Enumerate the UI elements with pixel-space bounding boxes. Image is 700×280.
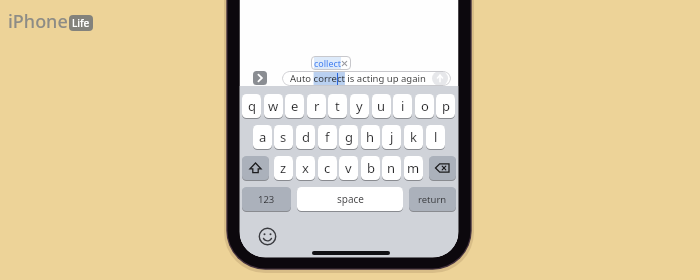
button[interactable]: b	[361, 156, 380, 180]
button[interactable]	[429, 156, 456, 180]
staticText: o	[421, 97, 429, 115]
button[interactable]: x	[296, 156, 315, 180]
staticText: p	[442, 97, 450, 115]
staticText: g	[345, 128, 353, 146]
staticText: collect	[314, 57, 342, 69]
button[interactable]: n	[382, 156, 401, 180]
button[interactable]: p	[436, 94, 455, 118]
button[interactable]: Auto correct is acting up again	[282, 71, 451, 86]
button[interactable]: a	[253, 125, 272, 149]
button[interactable]: j	[382, 125, 401, 149]
button[interactable]: h	[361, 125, 380, 149]
staticText: n	[387, 159, 396, 177]
staticText: s	[280, 128, 287, 146]
button[interactable]: iPhone	[8, 9, 92, 34]
button[interactable]	[432, 71, 448, 86]
button[interactable]	[253, 71, 267, 85]
staticText: m	[407, 159, 420, 177]
staticText: iPhone	[8, 9, 68, 34]
button[interactable]: l	[426, 125, 445, 149]
staticText: u	[377, 97, 386, 115]
staticText: b	[367, 159, 375, 177]
button[interactable]: 123	[242, 187, 291, 211]
staticText: t	[335, 97, 340, 115]
staticText: d	[302, 128, 310, 146]
staticText: k	[410, 128, 417, 146]
staticText: y	[356, 97, 363, 115]
button[interactable]: k	[404, 125, 423, 149]
staticText: i	[401, 97, 405, 115]
staticText: r	[314, 97, 320, 115]
staticText: Life	[72, 16, 90, 30]
staticText: w	[268, 97, 279, 115]
button[interactable]: z	[274, 156, 293, 180]
staticText: space	[337, 192, 364, 206]
button[interactable]: return	[409, 187, 456, 211]
staticText: return	[418, 193, 447, 206]
button[interactable]: c	[318, 156, 337, 180]
staticText: h	[366, 128, 375, 146]
staticText: e	[291, 97, 299, 115]
button[interactable]: m	[404, 156, 423, 180]
button[interactable]: collect	[311, 56, 351, 70]
staticText: l	[434, 128, 438, 146]
button[interactable]: w	[264, 94, 283, 118]
button[interactable]: o	[415, 94, 434, 118]
staticText: v	[345, 159, 352, 177]
button[interactable]: s	[274, 125, 293, 149]
button[interactable]: d	[296, 125, 315, 149]
staticText: q	[248, 97, 256, 115]
staticText: f	[325, 128, 330, 146]
staticText: Auto correct is acting up again	[290, 72, 426, 85]
staticText: z	[280, 159, 287, 177]
button[interactable]: e	[285, 94, 304, 118]
staticText: 123	[258, 193, 275, 206]
button[interactable]: r	[307, 94, 326, 118]
button[interactable]: y	[350, 94, 369, 118]
button[interactable]: q	[242, 94, 261, 118]
staticText: j	[390, 128, 394, 146]
staticText: x	[302, 159, 309, 177]
button[interactable]: i	[393, 94, 412, 118]
button[interactable]: space	[297, 187, 403, 211]
button[interactable]: t	[328, 94, 347, 118]
button[interactable]: v	[339, 156, 358, 180]
button[interactable]	[242, 156, 269, 180]
button[interactable]: f	[318, 125, 337, 149]
button[interactable]: u	[372, 94, 391, 118]
staticText: a	[259, 128, 267, 146]
staticText: c	[324, 159, 331, 177]
button[interactable]: g	[339, 125, 358, 149]
